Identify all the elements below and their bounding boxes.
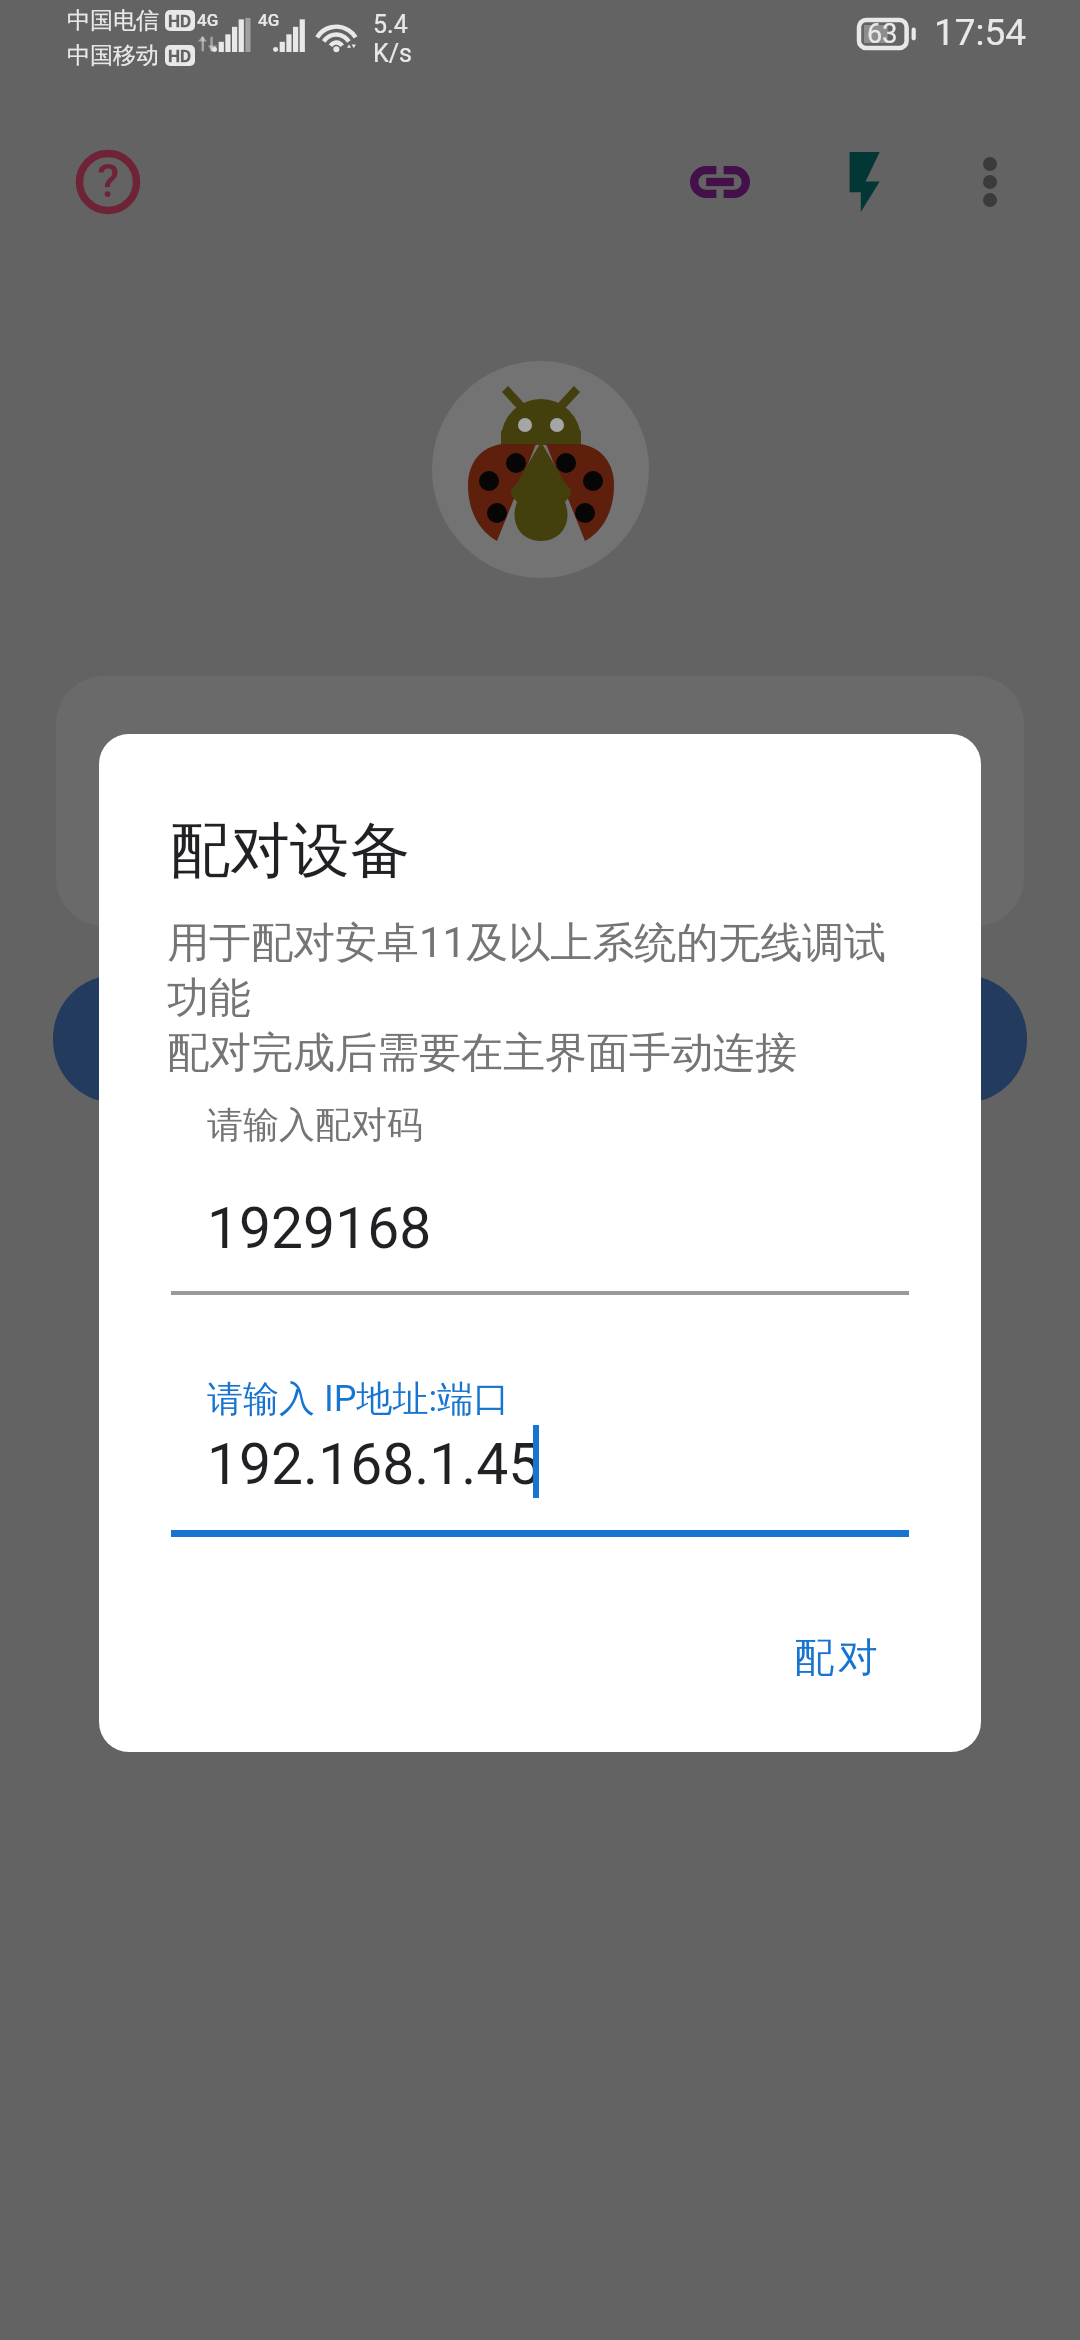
staticText: 配对设备 [170, 813, 410, 889]
staticText: 请输入 IP地址:端口 [207, 1376, 510, 1421]
button[interactable]: Pair device [818, 136, 910, 228]
button[interactable]: 配对 [770, 1616, 902, 1698]
staticText: K/s [373, 39, 412, 68]
button[interactable] [53, 975, 1027, 1103]
staticText: 5.4 [373, 10, 408, 39]
staticText: 192.168.1.45 [207, 1431, 541, 1498]
staticText: HD [168, 46, 192, 66]
staticText: 17:54 [934, 11, 1027, 54]
staticText: 用于配对安卓11及以上系统的无线调试 功能 配对完成后需要在主界面手动连接 [167, 917, 887, 1080]
staticText: HD [168, 11, 192, 31]
button[interactable] [56, 676, 1024, 926]
staticText: ? [97, 154, 120, 208]
button[interactable]: Dismiss dialog [0, 0, 1080, 2340]
button[interactable]: Connect device [674, 136, 766, 228]
staticText: 请输入配对码 [207, 1102, 423, 1147]
staticText: 4G [197, 10, 219, 30]
button[interactable]: 请输入 IP地址:端口 [171, 1356, 909, 1537]
staticText: 1929168 [207, 1195, 432, 1262]
staticText: 4G [258, 10, 280, 30]
button[interactable]: 请输入配对码 [171, 1082, 909, 1295]
button[interactable]: More options [944, 136, 1036, 228]
staticText: 配对 [792, 1632, 880, 1682]
staticText: 中国电信 [67, 6, 159, 35]
button[interactable]: Help [62, 136, 154, 228]
staticText: 63 [867, 18, 898, 50]
staticText: 中国移动 [67, 41, 159, 70]
